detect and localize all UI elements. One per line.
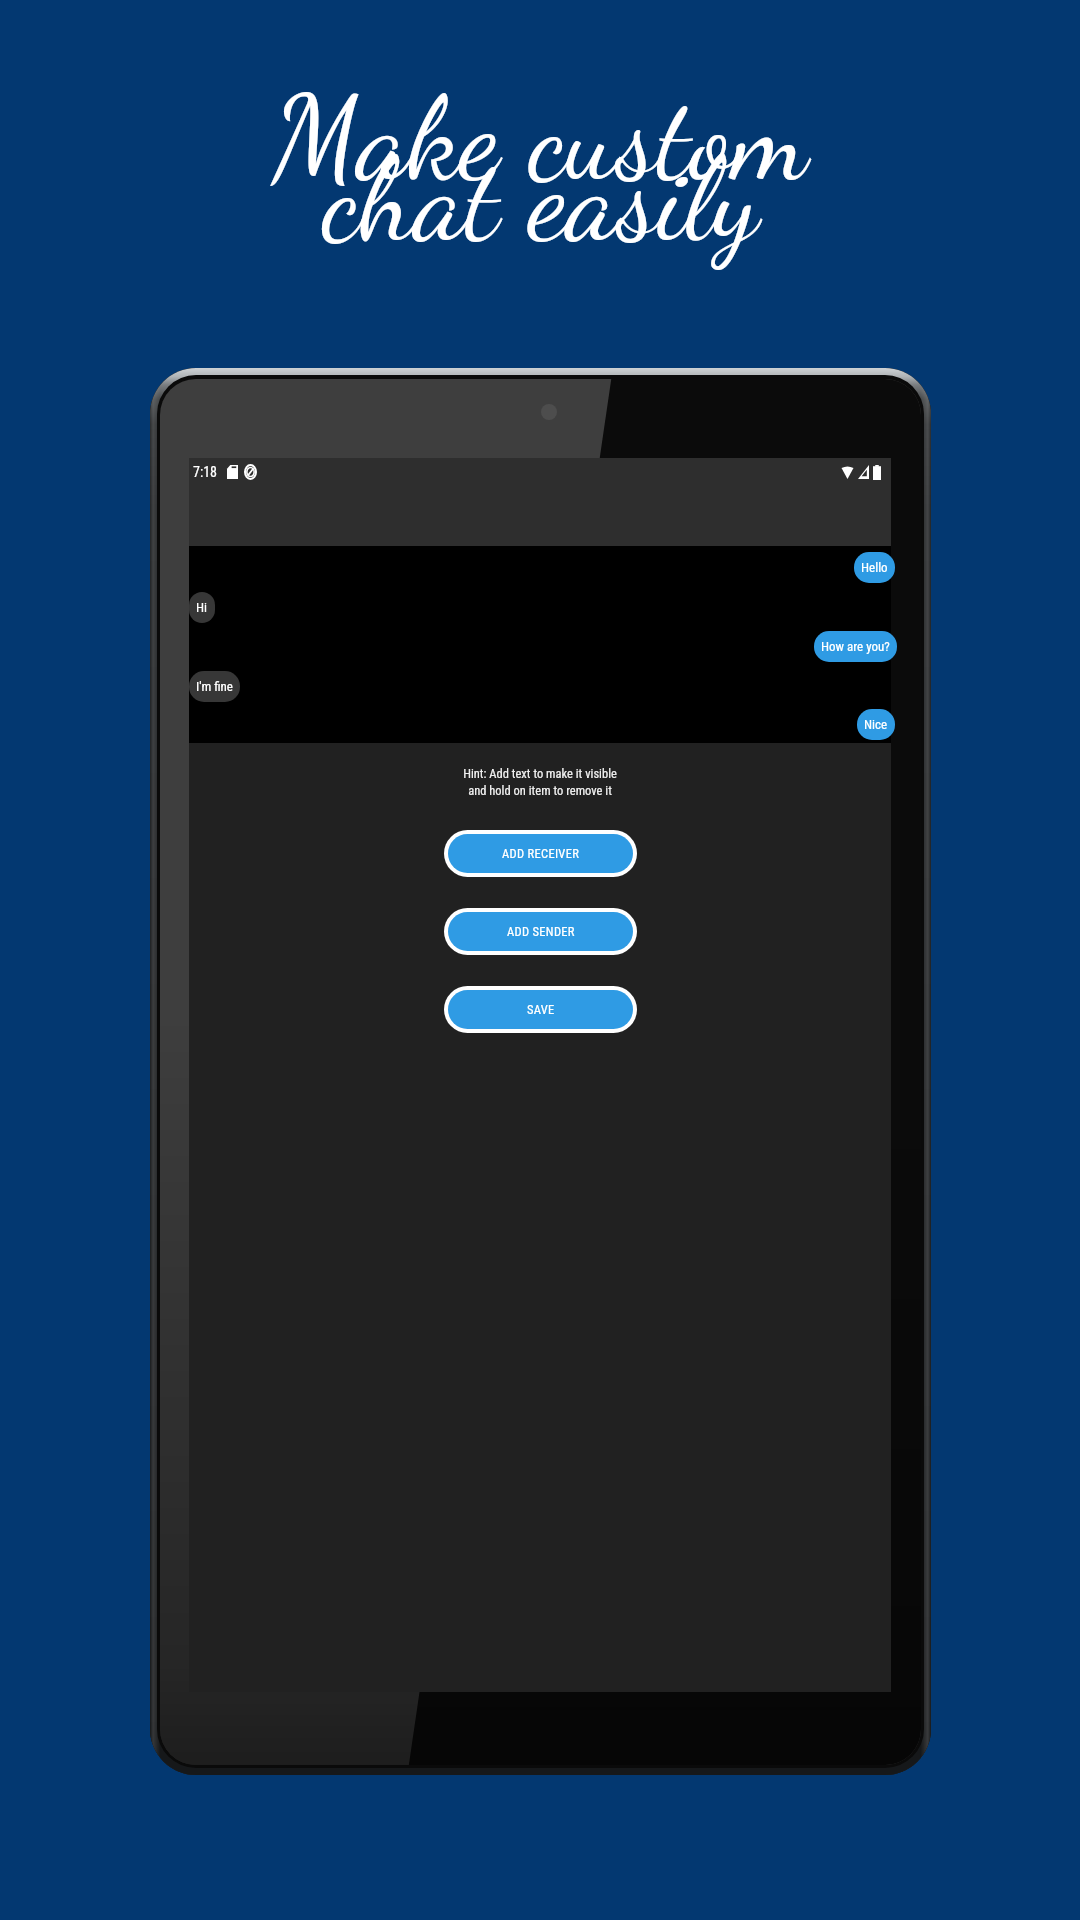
staticText: Hi	[196, 600, 208, 615]
other: Storage	[227, 465, 238, 479]
button[interactable]: I'm fine	[189, 671, 240, 702]
button[interactable]: ADD RECEIVER	[448, 834, 633, 873]
staticText: chat easily	[322, 130, 759, 269]
staticText: How are you?	[821, 639, 890, 654]
other: Wi-Fi	[841, 465, 854, 479]
staticText: ADD SENDER	[507, 924, 575, 939]
button[interactable]: Hi	[189, 592, 215, 623]
button[interactable]: ADD SENDER	[448, 912, 633, 951]
staticText: 7:18	[193, 464, 218, 480]
staticText: Make custom	[272, 69, 808, 208]
button[interactable]: SAVE	[448, 990, 633, 1029]
other: Do not disturb	[244, 464, 257, 480]
staticText: Hello	[861, 560, 888, 575]
button[interactable]: How are you?	[814, 631, 897, 662]
staticText: Nice	[864, 717, 888, 732]
staticText: Hint: Add text to make it visible and ho…	[189, 766, 891, 798]
button[interactable]: Nice	[857, 709, 895, 740]
button[interactable]: Hello	[854, 552, 895, 583]
staticText: SAVE	[527, 1002, 555, 1017]
staticText: ADD RECEIVER	[502, 846, 580, 861]
other: Signal	[858, 465, 869, 479]
staticText: I'm fine	[196, 679, 233, 694]
other: Battery	[873, 465, 881, 480]
